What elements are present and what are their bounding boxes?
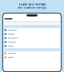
button[interactable]: [3, 36, 61, 40]
button[interactable]: [3, 28, 61, 32]
button[interactable]: [3, 55, 61, 59]
button[interactable]: [3, 44, 61, 48]
staticText: and Smartlist listings: [18, 6, 46, 9]
button[interactable]: [3, 40, 61, 44]
staticText: Search your contacts: [18, 3, 45, 6]
button[interactable]: [3, 32, 61, 36]
button[interactable]: [3, 51, 61, 55]
